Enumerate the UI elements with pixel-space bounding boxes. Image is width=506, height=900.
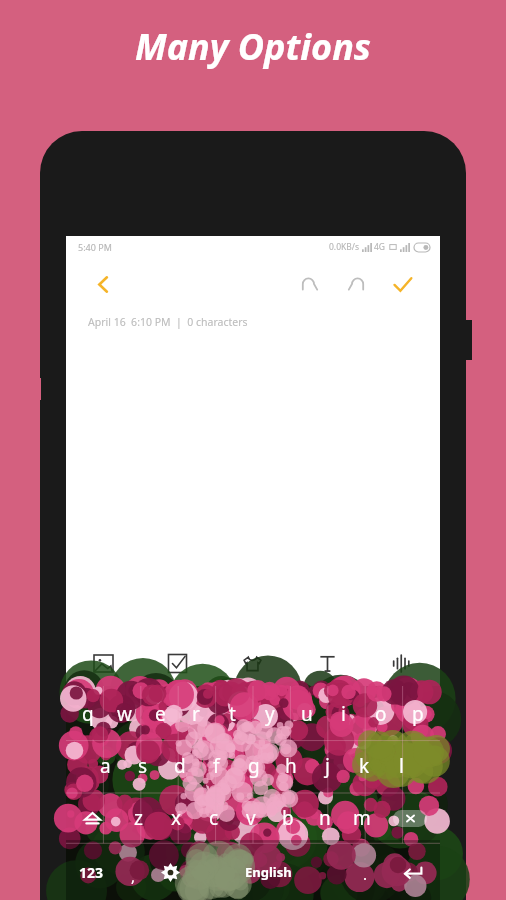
- button[interactable]: Text style: [290, 640, 365, 686]
- button[interactable]: u: [288, 688, 325, 740]
- button[interactable]: t: [214, 688, 251, 740]
- staticText: m: [353, 805, 371, 831]
- staticText: u: [301, 701, 313, 727]
- button[interactable]: Theme: [215, 640, 290, 686]
- staticText: .: [363, 864, 368, 884]
- staticText: Many Options: [135, 22, 371, 71]
- button[interactable]: i: [325, 688, 362, 740]
- button[interactable]: Done: [384, 266, 420, 302]
- button[interactable]: Enter: [385, 844, 440, 900]
- staticText: w: [117, 701, 132, 727]
- staticText: o: [375, 701, 387, 727]
- staticText: v: [246, 805, 256, 831]
- button[interactable]: p: [399, 688, 436, 740]
- button[interactable]: Checklist: [140, 640, 215, 686]
- staticText: q: [82, 701, 94, 727]
- staticText: f: [213, 753, 220, 779]
- button[interactable]: 123: [66, 844, 116, 900]
- staticText: 4G: [374, 241, 386, 253]
- button[interactable]: d: [161, 740, 198, 792]
- staticText: d: [174, 753, 186, 779]
- staticText: k: [359, 753, 370, 779]
- button[interactable]: m: [343, 792, 380, 844]
- staticText: c: [209, 805, 219, 831]
- staticText: April 16 6:10 PM | 0 characters: [88, 315, 248, 329]
- button[interactable]: Insert image: [66, 640, 140, 686]
- button[interactable]: Redo: [338, 266, 374, 302]
- button[interactable]: c: [195, 792, 232, 844]
- button[interactable]: g: [235, 740, 272, 792]
- staticText: 123: [79, 863, 104, 882]
- button[interactable]: v: [232, 792, 269, 844]
- button[interactable]: q: [70, 688, 106, 740]
- staticText: n: [319, 805, 331, 831]
- staticText: r: [192, 701, 200, 727]
- staticText: e: [155, 701, 166, 727]
- staticText: z: [134, 805, 143, 831]
- staticText: h: [285, 753, 297, 779]
- button[interactable]: k: [346, 740, 383, 792]
- button[interactable]: n: [306, 792, 343, 844]
- button[interactable]: English: [190, 844, 346, 900]
- staticText: j: [325, 753, 330, 779]
- button[interactable]: z: [119, 792, 157, 844]
- button[interactable]: Backspace: [380, 792, 440, 844]
- button[interactable]: e: [142, 688, 178, 740]
- button[interactable]: .: [346, 844, 385, 900]
- staticText: y: [265, 701, 275, 727]
- button[interactable]: Shift: [66, 792, 119, 844]
- staticText: t: [229, 701, 236, 727]
- button[interactable]: Undo: [292, 266, 328, 302]
- staticText: g: [248, 753, 260, 779]
- staticText: b: [282, 805, 294, 831]
- button[interactable]: s: [124, 740, 161, 792]
- button[interactable]: w: [106, 688, 142, 740]
- staticText: ,: [131, 866, 136, 886]
- staticText: l: [399, 753, 404, 779]
- button[interactable]: x: [157, 792, 195, 844]
- staticText: a: [100, 753, 111, 779]
- button[interactable]: Keyboard settings: [151, 844, 190, 900]
- staticText: p: [412, 701, 424, 727]
- button[interactable]: f: [198, 740, 235, 792]
- button[interactable]: Back: [86, 267, 120, 301]
- staticText: 5:40 PM: [78, 241, 112, 253]
- button[interactable]: l: [383, 740, 420, 792]
- staticText: English: [245, 863, 292, 881]
- button[interactable]: b: [269, 792, 306, 844]
- button[interactable]: j: [309, 740, 346, 792]
- staticText: 0.0KB/s: [329, 241, 360, 253]
- staticText: i: [341, 701, 346, 727]
- button[interactable]: r: [178, 688, 214, 740]
- button[interactable]: Audio: [365, 640, 440, 686]
- button[interactable]: a: [86, 740, 124, 792]
- button[interactable]: o: [362, 688, 399, 740]
- button[interactable]: y: [251, 688, 288, 740]
- staticText: x: [171, 805, 182, 831]
- button[interactable]: ,: [116, 844, 151, 900]
- staticText: s: [138, 753, 148, 779]
- button[interactable]: h: [272, 740, 309, 792]
